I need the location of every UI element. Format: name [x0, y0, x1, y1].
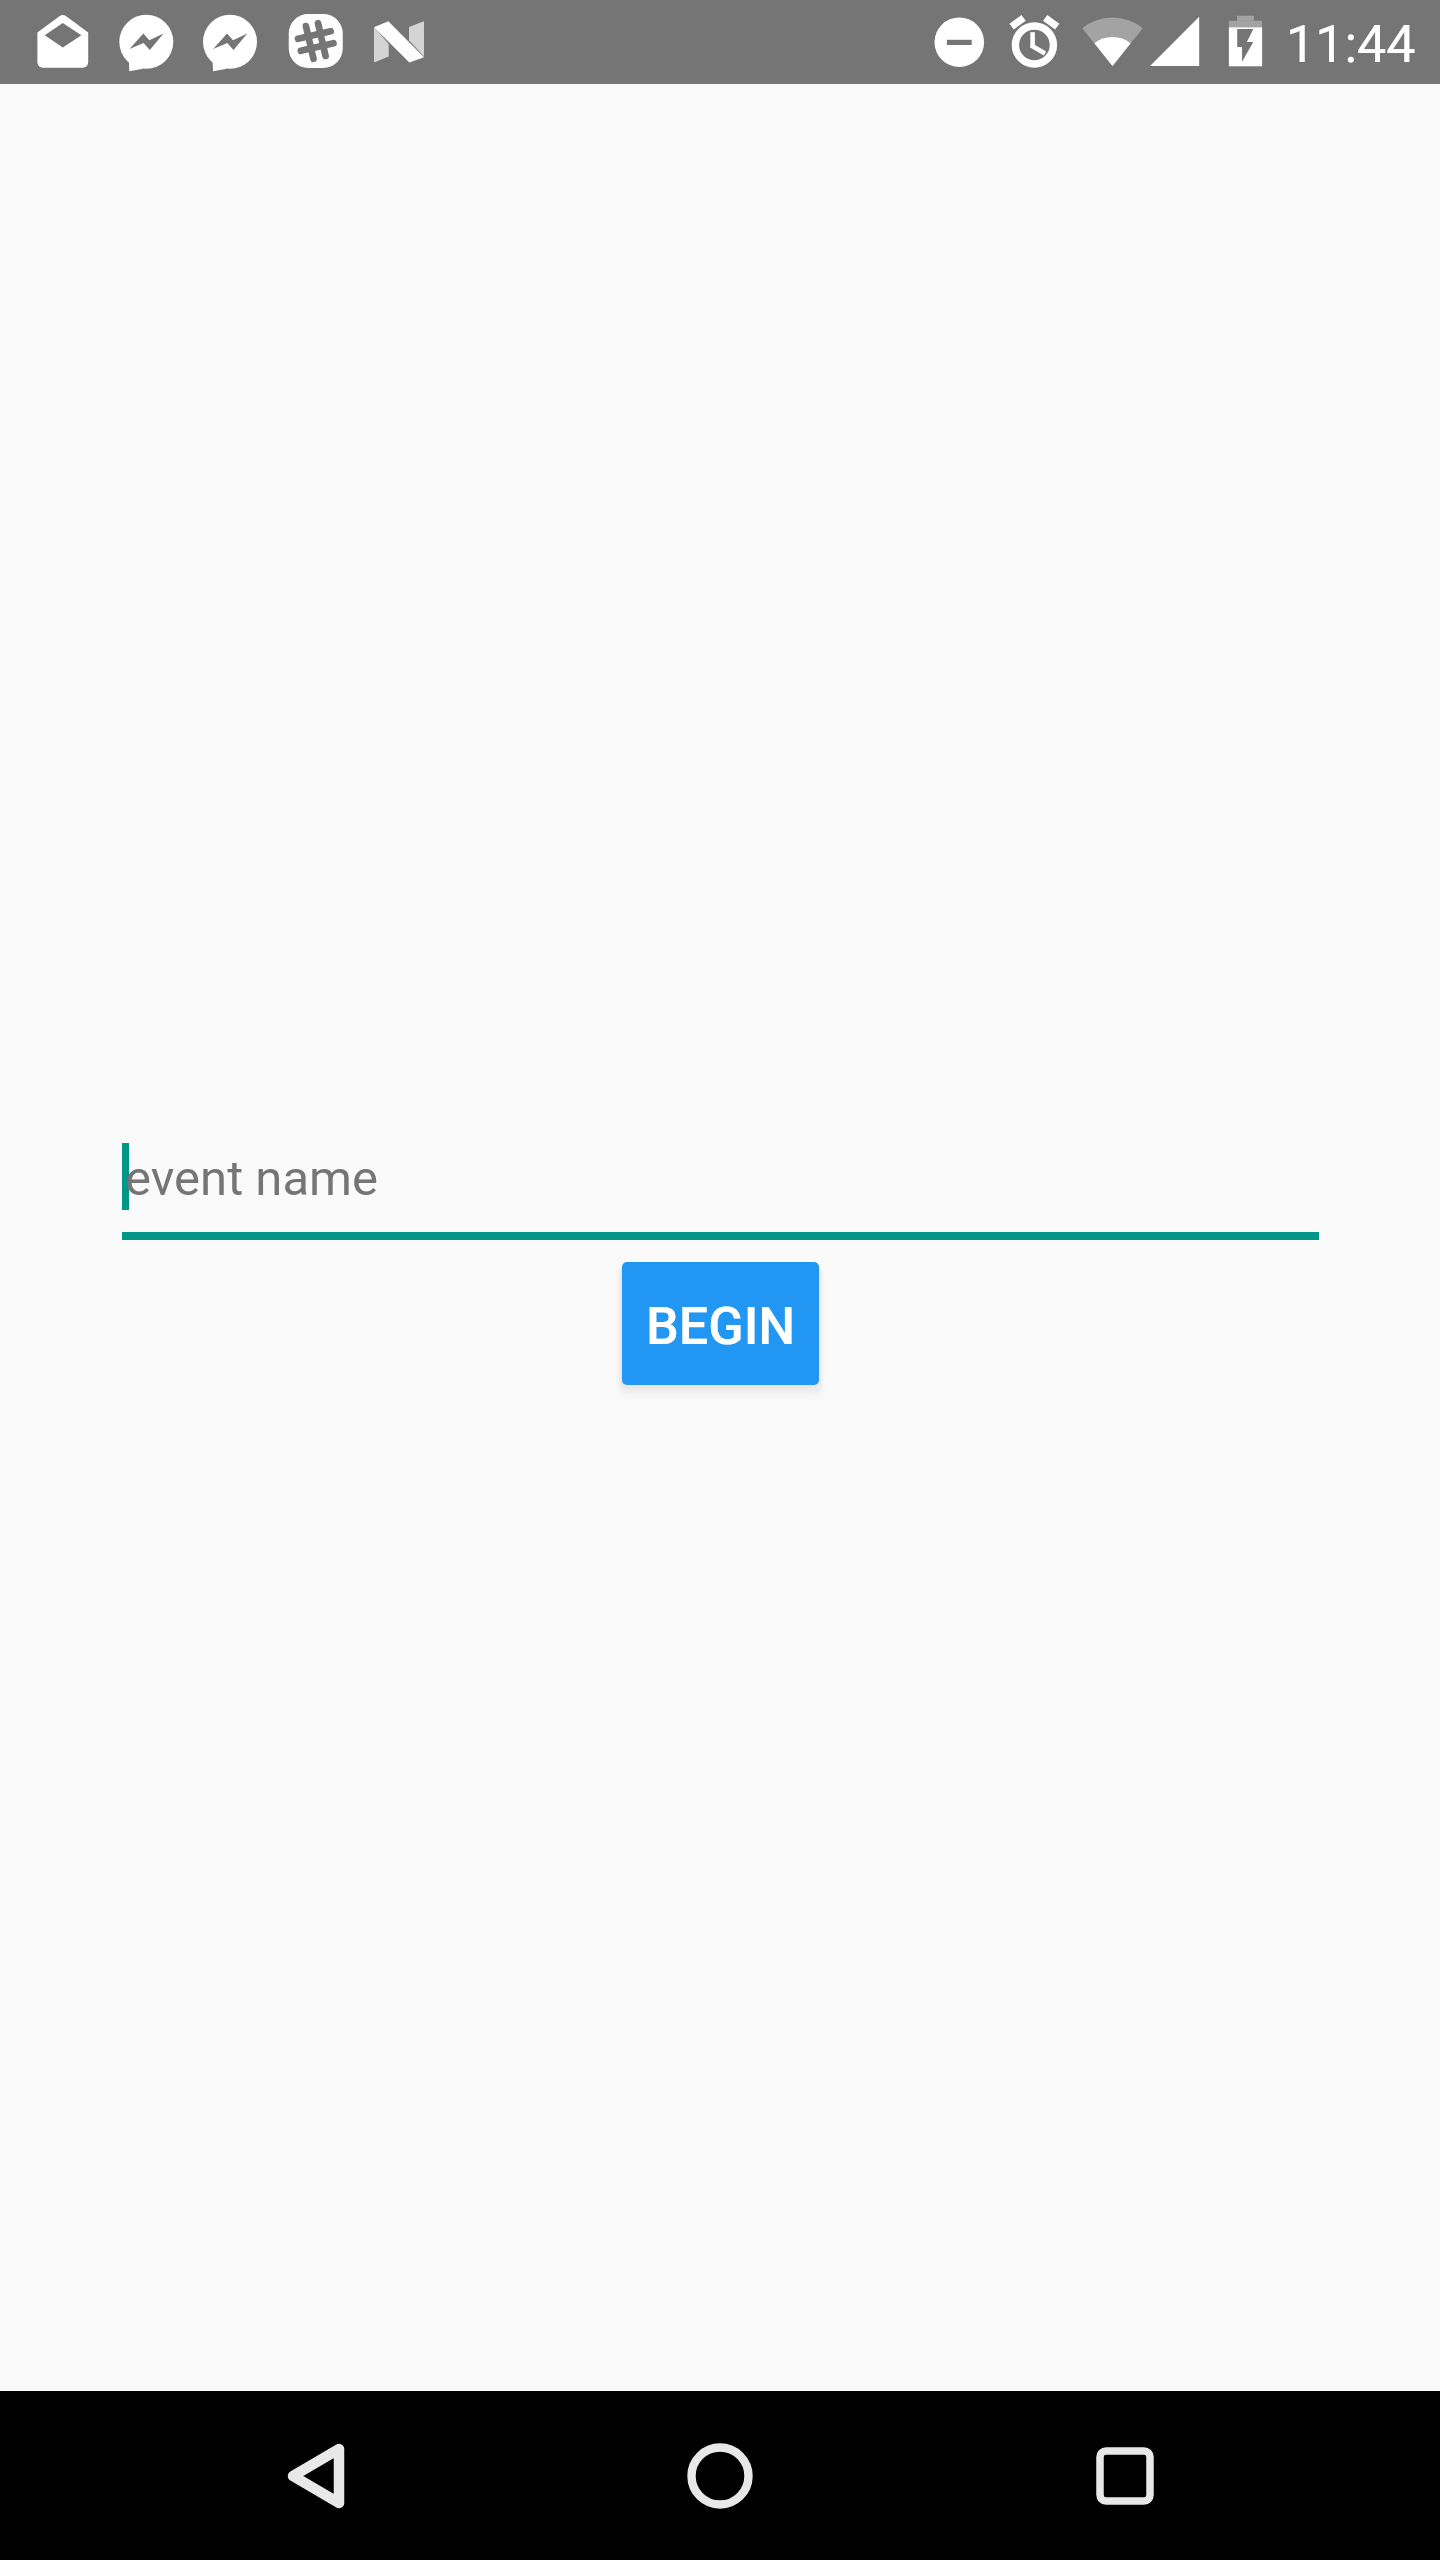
- staticText: 11:44: [1286, 14, 1416, 75]
- button[interactable]: event name: [122, 1128, 1319, 1240]
- button[interactable]: Home: [636, 2392, 804, 2560]
- button[interactable]: Recent apps: [1041, 2392, 1209, 2560]
- button[interactable]: Back: [232, 2392, 400, 2560]
- staticText: BEGIN: [646, 1296, 796, 1357]
- button[interactable]: BEGIN: [622, 1262, 819, 1385]
- staticText: event name: [125, 1150, 378, 1207]
